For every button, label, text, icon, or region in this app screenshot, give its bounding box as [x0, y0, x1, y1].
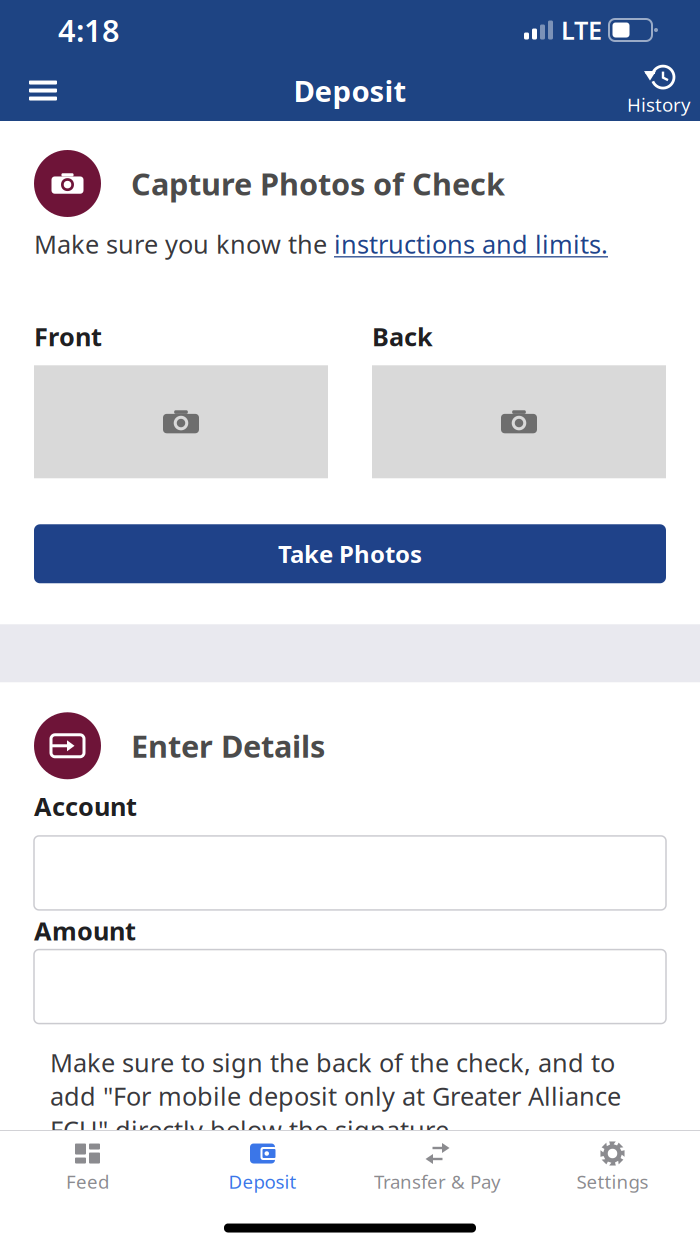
- staticText: Capture Photos of Check: [131, 163, 505, 204]
- staticText: instructions and limits.: [334, 227, 608, 261]
- button[interactable]: Menu: [18, 61, 68, 119]
- staticText: Transfer & Pay: [374, 1169, 501, 1194]
- staticText: Make sure to sign the back of the check,…: [50, 1046, 621, 1146]
- staticText: Deposit: [228, 1169, 296, 1194]
- staticText: Amount: [34, 914, 136, 947]
- staticText: Feed: [66, 1169, 109, 1194]
- staticText: Back: [372, 320, 433, 353]
- button[interactable]: Transfer & Pay: [350, 1142, 525, 1194]
- staticText: Settings: [576, 1169, 648, 1194]
- staticText: Enter Details: [131, 725, 325, 766]
- staticText: LTE: [561, 13, 602, 47]
- staticText: Deposit: [293, 71, 406, 110]
- button[interactable]: Settings: [525, 1142, 700, 1194]
- staticText: Account: [34, 789, 137, 823]
- button[interactable]: Feed: [0, 1142, 175, 1194]
- button[interactable]: Deposit: [175, 1142, 350, 1194]
- staticText: History: [627, 92, 691, 117]
- button[interactable]: instructions and limits.: [334, 227, 608, 261]
- staticText: Take Photos: [278, 538, 422, 570]
- staticText: Make sure you know the: [34, 227, 334, 261]
- button[interactable]: History: [626, 61, 692, 119]
- staticText: Front: [34, 320, 102, 353]
- button[interactable]: Take Photos: [34, 524, 666, 583]
- staticText: 4:18: [58, 10, 120, 50]
